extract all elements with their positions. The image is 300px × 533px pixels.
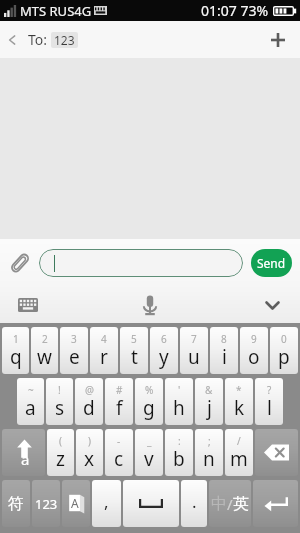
button[interactable]: Voice input (137, 292, 163, 318)
button[interactable]: ) (76, 429, 103, 476)
button[interactable]: Send (251, 249, 292, 277)
staticText: d (83, 395, 95, 421)
staticText: 中 (211, 494, 227, 514)
button[interactable]: 中 (209, 480, 251, 527)
staticText: ? (267, 383, 272, 397)
staticText: @ (85, 383, 94, 397)
button[interactable]: # (105, 378, 133, 425)
button[interactable]: ( (47, 429, 74, 476)
staticText: h (173, 395, 185, 421)
button[interactable]: 7 (180, 327, 208, 374)
staticText: l (267, 395, 272, 421)
button[interactable]: @ (75, 378, 103, 425)
button[interactable]: 6 (150, 327, 178, 374)
staticText: f (116, 395, 123, 421)
staticText: e (69, 344, 80, 370)
button[interactable]: - (105, 429, 133, 476)
button[interactable]: 4 (90, 327, 118, 374)
staticText: To: (28, 30, 48, 49)
button[interactable]: % (135, 378, 163, 425)
button[interactable]: ! (46, 378, 73, 425)
button[interactable]: ~ (17, 378, 44, 425)
staticText: p (278, 344, 290, 370)
staticText: n (203, 446, 215, 472)
button[interactable]: * (225, 378, 253, 425)
staticText: x (84, 446, 95, 472)
button[interactable]: 123 (32, 480, 60, 527)
staticText: * (236, 383, 242, 397)
staticText: 01:07 73% (201, 1, 269, 20)
button[interactable]: 1 (2, 327, 29, 374)
staticText: MTS RUS4G (20, 2, 92, 20)
staticText: 8 (221, 332, 227, 346)
staticText: y (159, 344, 169, 370)
staticText: ! (58, 383, 61, 397)
button[interactable]: 9 (240, 327, 268, 374)
button[interactable]: Switch keyboard (15, 292, 41, 318)
button[interactable]: _ (135, 429, 163, 476)
staticText: 0 (281, 332, 287, 346)
staticText: . (192, 490, 197, 513)
staticText: g (143, 395, 155, 421)
button[interactable]: : (165, 429, 193, 476)
staticText: # (116, 383, 123, 397)
staticText: a (25, 395, 36, 421)
button[interactable]: Shift (2, 429, 45, 476)
staticText: 9 (251, 332, 257, 346)
button[interactable]: 123 (54, 32, 75, 48)
button[interactable]: / (225, 429, 253, 476)
staticText: j (207, 395, 212, 421)
staticText: , (104, 490, 109, 513)
button[interactable] (39, 249, 243, 277)
staticText: 6 (161, 332, 167, 346)
button[interactable]: . (181, 480, 207, 527)
staticText: ' (178, 383, 181, 397)
button[interactable]: Enter (253, 480, 298, 527)
staticText: / (227, 494, 233, 514)
staticText: 4 (101, 332, 107, 346)
button[interactable]: ; (195, 429, 223, 476)
button[interactable]: ? (255, 378, 283, 425)
button[interactable]: 3 (60, 327, 88, 374)
staticText: t (131, 344, 138, 370)
staticText: k (234, 395, 245, 421)
staticText: z (56, 446, 65, 472)
staticText: : (178, 434, 181, 448)
staticText: ) (88, 434, 91, 448)
staticText: 1 (13, 332, 19, 346)
staticText: 5 (131, 332, 137, 346)
staticText: a (21, 449, 30, 469)
staticText: 123 (54, 32, 75, 48)
button[interactable]: 2 (31, 327, 58, 374)
button[interactable]: 符 (2, 480, 30, 527)
staticText: & (205, 383, 213, 397)
button[interactable]: & (195, 378, 223, 425)
button[interactable]: Space (123, 480, 179, 527)
button[interactable]: Attach file (0, 239, 39, 287)
staticText: 3 (71, 332, 77, 346)
staticText: ( (59, 434, 62, 448)
button[interactable]: Hide keyboard (259, 292, 285, 318)
staticText: u (188, 344, 200, 370)
staticText: o (248, 344, 260, 370)
button[interactable]: , (92, 480, 121, 527)
staticText: b (173, 446, 185, 472)
staticText: - (117, 434, 121, 448)
staticText: 英 (233, 494, 249, 514)
staticText: c (114, 446, 124, 472)
button[interactable]: Add recipient (256, 21, 300, 58)
button[interactable]: 8 (210, 327, 238, 374)
button[interactable]: Language (62, 480, 90, 527)
staticText: % (145, 383, 154, 397)
button[interactable]: 0 (270, 327, 298, 374)
button[interactable]: ' (165, 378, 193, 425)
button[interactable]: 5 (120, 327, 148, 374)
button[interactable]: Delete (255, 429, 298, 476)
staticText: q (10, 344, 22, 370)
button[interactable]: Back (0, 21, 24, 58)
staticText: r (100, 344, 108, 370)
staticText: A (71, 495, 79, 511)
staticText: i (222, 344, 227, 370)
staticText: Send (257, 255, 286, 271)
staticText: 123 (35, 495, 58, 513)
